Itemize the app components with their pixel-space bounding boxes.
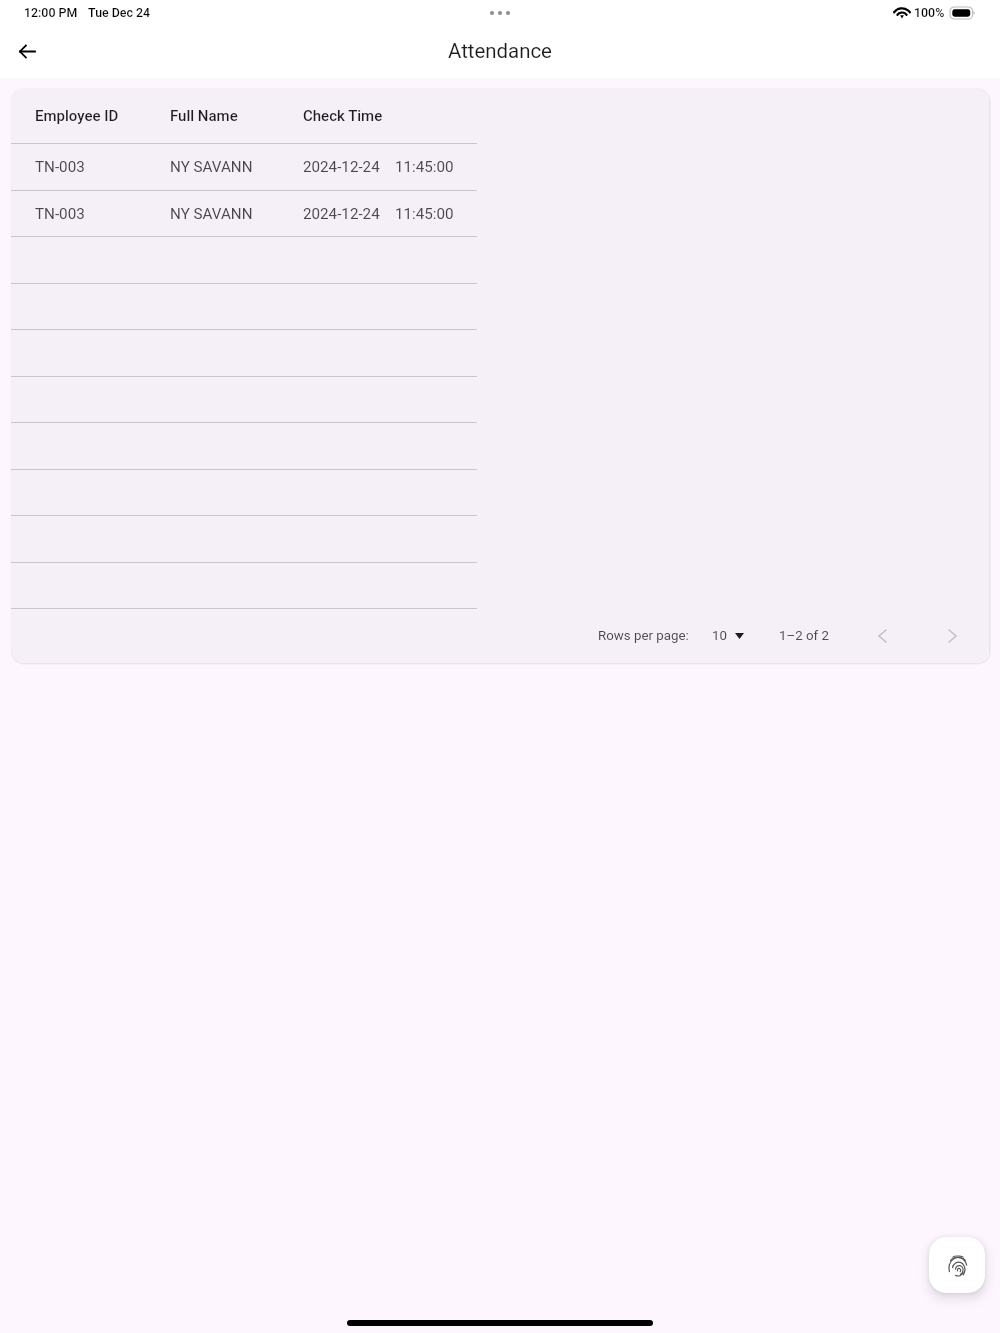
staticText: Rows per page:	[598, 628, 689, 644]
staticText: 11:45:00	[395, 205, 454, 223]
staticText: 11:45:00	[395, 158, 454, 176]
button[interactable]: Scan fingerprint	[929, 1237, 985, 1293]
staticText: NY SAVANN	[170, 158, 253, 176]
staticText: TN-003	[35, 205, 85, 223]
staticText: 10	[712, 628, 727, 644]
button[interactable]: Next page	[932, 616, 972, 656]
staticText: Full Name	[170, 107, 238, 125]
staticText: Check Time	[303, 107, 383, 125]
staticText: Tue Dec 24	[88, 5, 151, 20]
button[interactable]: 10	[700, 620, 756, 652]
staticText: 1–2 of 2	[779, 628, 829, 644]
staticText: 2024-12-24	[303, 205, 380, 223]
staticText: 2024-12-24	[303, 158, 380, 176]
staticText: Attendance	[448, 39, 552, 63]
button[interactable]: Back	[5, 30, 49, 74]
staticText: NY SAVANN	[170, 205, 253, 223]
staticText: 100%	[914, 5, 945, 20]
button[interactable]: Previous page	[862, 616, 902, 656]
staticText: 12:00 PM	[24, 5, 78, 20]
staticText: Employee ID	[35, 107, 119, 125]
staticText: TN-003	[35, 158, 85, 176]
